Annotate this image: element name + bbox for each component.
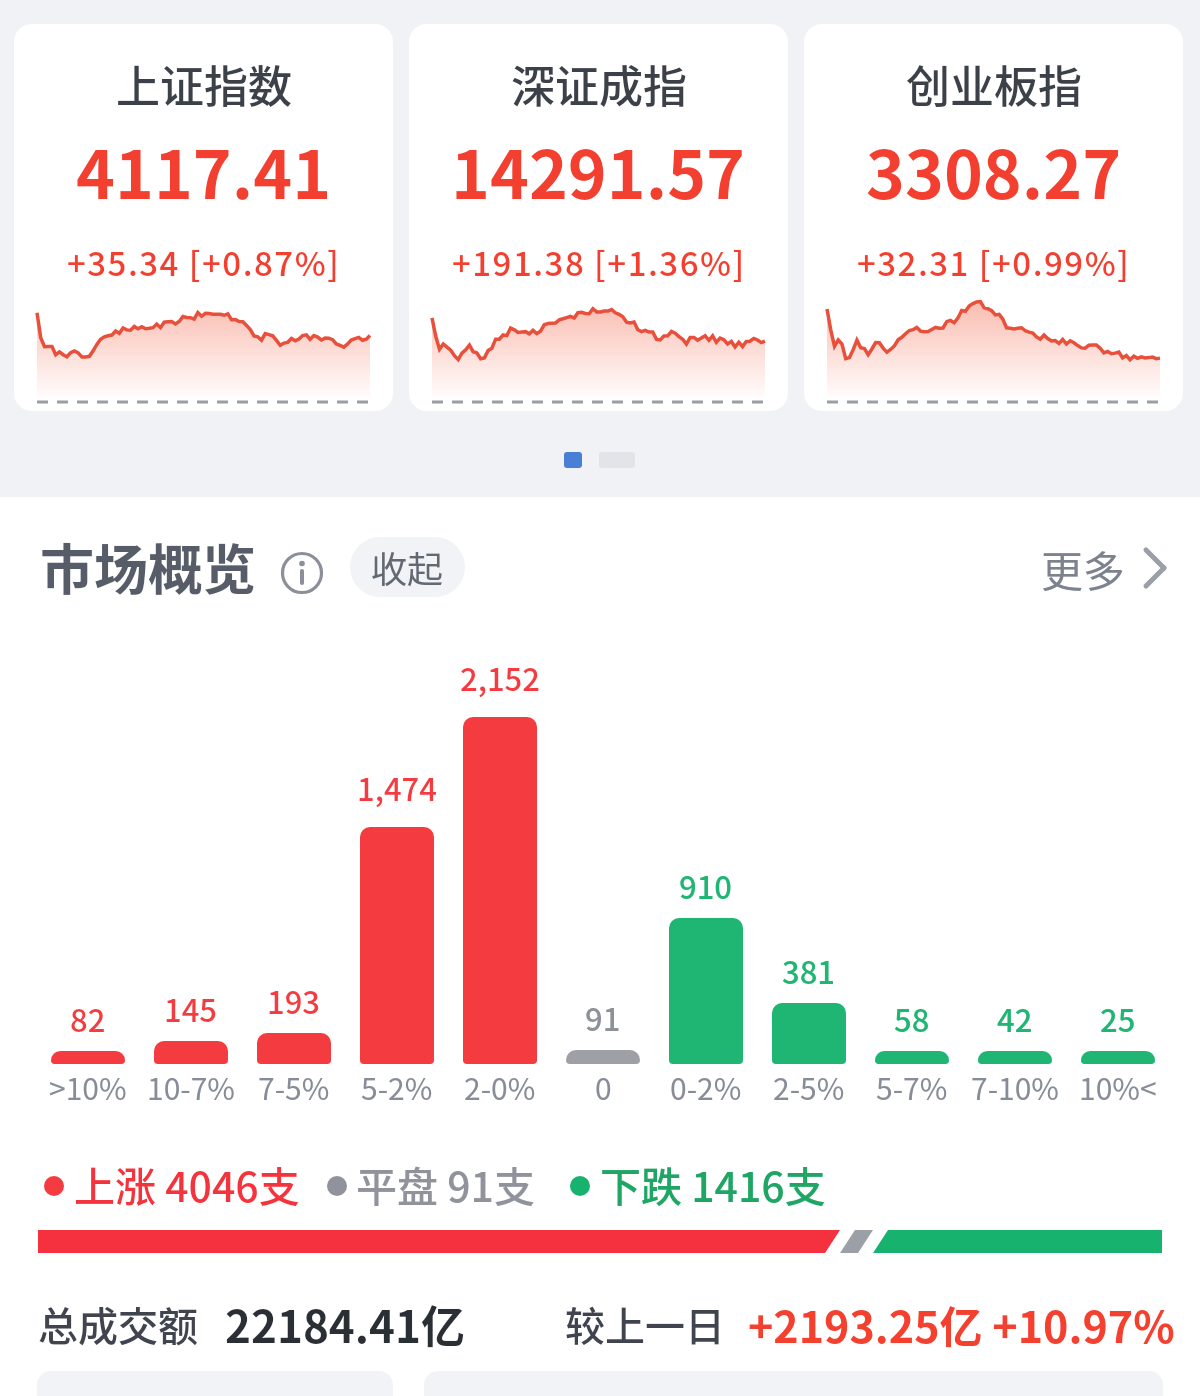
button[interactable]: 创业板指: [804, 24, 1183, 411]
staticText: 更多: [1041, 538, 1126, 599]
button[interactable]: 收起: [350, 537, 465, 597]
staticText: 3308.27: [866, 122, 1122, 212]
staticText: +32.31 [+0.99%]: [857, 238, 1131, 284]
staticText: 2,152: [460, 655, 540, 700]
staticText: 深证成指: [511, 52, 687, 116]
staticText: 上涨 4046支: [74, 1154, 300, 1213]
staticText: 58: [894, 996, 930, 1041]
staticText: 上证指数: [116, 52, 292, 116]
staticText: 下跌 1416支: [600, 1154, 826, 1213]
staticText: 5-7%: [876, 1065, 948, 1108]
staticText: 0: [595, 1065, 612, 1108]
button[interactable]: [280, 551, 324, 595]
staticText: 193: [267, 978, 321, 1023]
staticText: 7-10%: [971, 1065, 1059, 1108]
staticText: 4117.41: [76, 122, 332, 212]
button[interactable]: [1020, 536, 1180, 598]
button[interactable]: 上证指数: [14, 24, 393, 411]
staticText: 10-7%: [147, 1065, 235, 1108]
staticText: 平盘 91支: [356, 1154, 535, 1213]
staticText: 14291.57: [451, 122, 746, 212]
staticText: 收起: [371, 541, 444, 593]
staticText: 145: [164, 986, 218, 1031]
staticText: 较上一日: [565, 1295, 725, 1353]
staticText: 91: [585, 995, 621, 1040]
staticText: 10%<: [1079, 1065, 1157, 1108]
staticText: 1,474: [357, 765, 437, 810]
staticText: 25: [1100, 996, 1136, 1041]
staticText: 0-2%: [670, 1065, 742, 1108]
staticText: 市场概览: [40, 527, 256, 605]
staticText: +191.38 [+1.36%]: [452, 238, 746, 284]
staticText: 910: [679, 863, 733, 908]
staticText: +2193.25亿 +10.97%: [748, 1293, 1175, 1355]
staticText: 82: [70, 996, 106, 1041]
button[interactable]: [564, 452, 582, 468]
staticText: 总成交额: [38, 1295, 198, 1353]
staticText: +35.34 [+0.87%]: [67, 238, 341, 284]
staticText: 381: [782, 948, 836, 993]
button[interactable]: 深证成指: [409, 24, 788, 411]
staticText: 42: [997, 996, 1033, 1041]
staticText: >10%: [49, 1065, 127, 1108]
staticText: 5-2%: [361, 1065, 433, 1108]
staticText: 7-5%: [258, 1065, 330, 1108]
staticText: 创业板指: [906, 52, 1082, 116]
staticText: 2-5%: [773, 1065, 845, 1108]
staticText: 2-0%: [464, 1065, 536, 1108]
staticText: 22184.41亿: [225, 1292, 466, 1356]
